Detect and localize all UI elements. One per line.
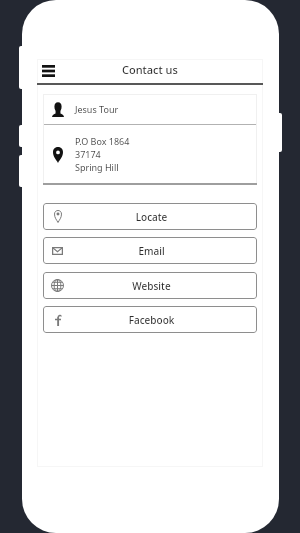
other: Facebook xyxy=(52,314,64,326)
staticText: Contact us xyxy=(122,62,178,77)
staticText: Locate xyxy=(59,210,244,224)
staticText: P.O Box 1864 xyxy=(75,135,130,147)
staticText: Spring Hill xyxy=(75,161,119,173)
button[interactable]: Menu xyxy=(37,60,60,83)
button[interactable]: Locate xyxy=(43,203,257,230)
staticText: Jesus Tour xyxy=(75,103,119,115)
staticText: Email xyxy=(59,244,244,258)
button[interactable]: Jesus Tour xyxy=(43,94,257,124)
staticText: Facebook xyxy=(59,313,244,327)
button[interactable]: Email xyxy=(43,237,257,264)
button[interactable]: P.O Box 1864 xyxy=(43,125,257,184)
staticText: 37174 xyxy=(75,148,101,160)
button[interactable]: Website xyxy=(43,272,257,299)
button[interactable]: Facebook xyxy=(43,306,257,333)
staticText: Website xyxy=(59,279,244,293)
